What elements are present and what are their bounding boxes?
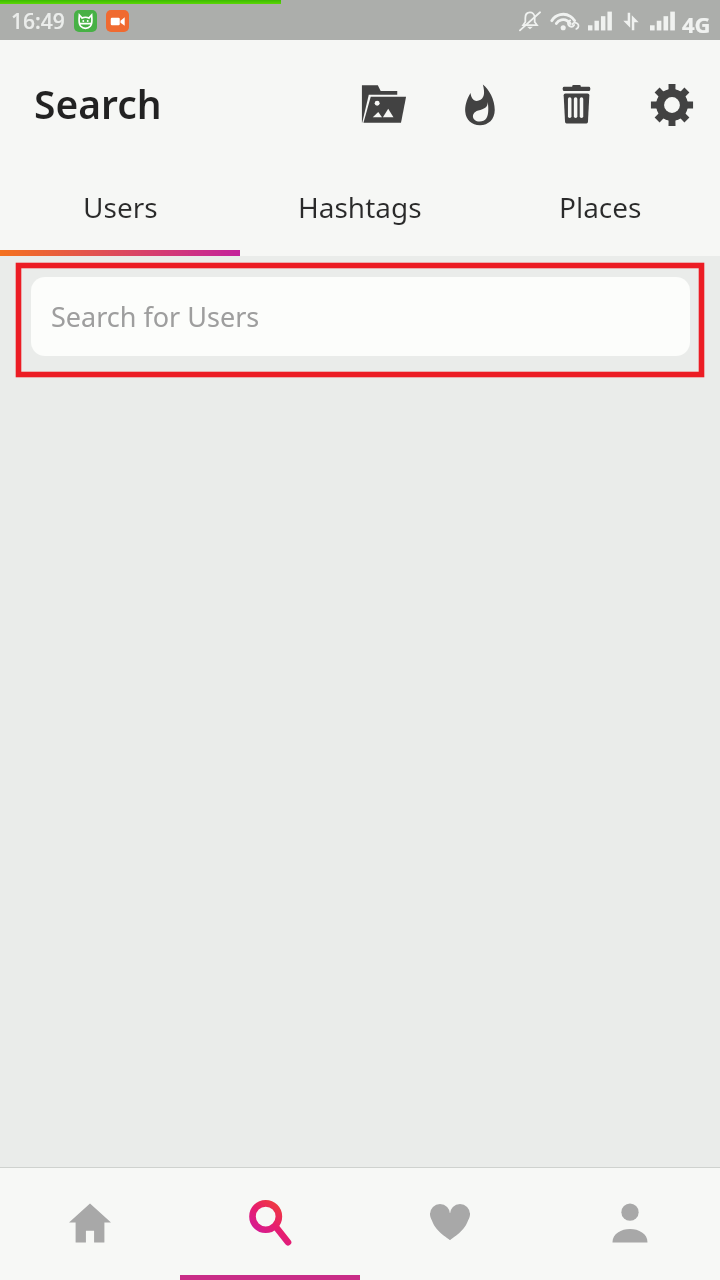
staticText: Hashtags [298, 188, 422, 226]
button[interactable]: Search [180, 1167, 360, 1279]
staticText: 4G [682, 9, 711, 39]
staticText: 16:49 [11, 7, 65, 36]
staticText: Places [559, 188, 642, 226]
button[interactable]: Trending [446, 71, 514, 139]
button[interactable]: Hashtags [240, 170, 480, 250]
button[interactable]: Likes [360, 1167, 540, 1279]
button[interactable]: Search for Users [31, 277, 690, 356]
button[interactable]: Users [0, 170, 240, 250]
staticText: Search for Users [51, 298, 260, 335]
button[interactable]: Profile [540, 1167, 720, 1279]
button[interactable]: Places [480, 170, 720, 250]
button[interactable]: Photo folder [350, 71, 418, 139]
button[interactable]: Delete [542, 71, 610, 139]
button[interactable]: Settings [638, 71, 706, 139]
staticText: Search [34, 77, 162, 130]
staticText: Users [83, 188, 158, 226]
button[interactable]: Home [0, 1167, 180, 1279]
